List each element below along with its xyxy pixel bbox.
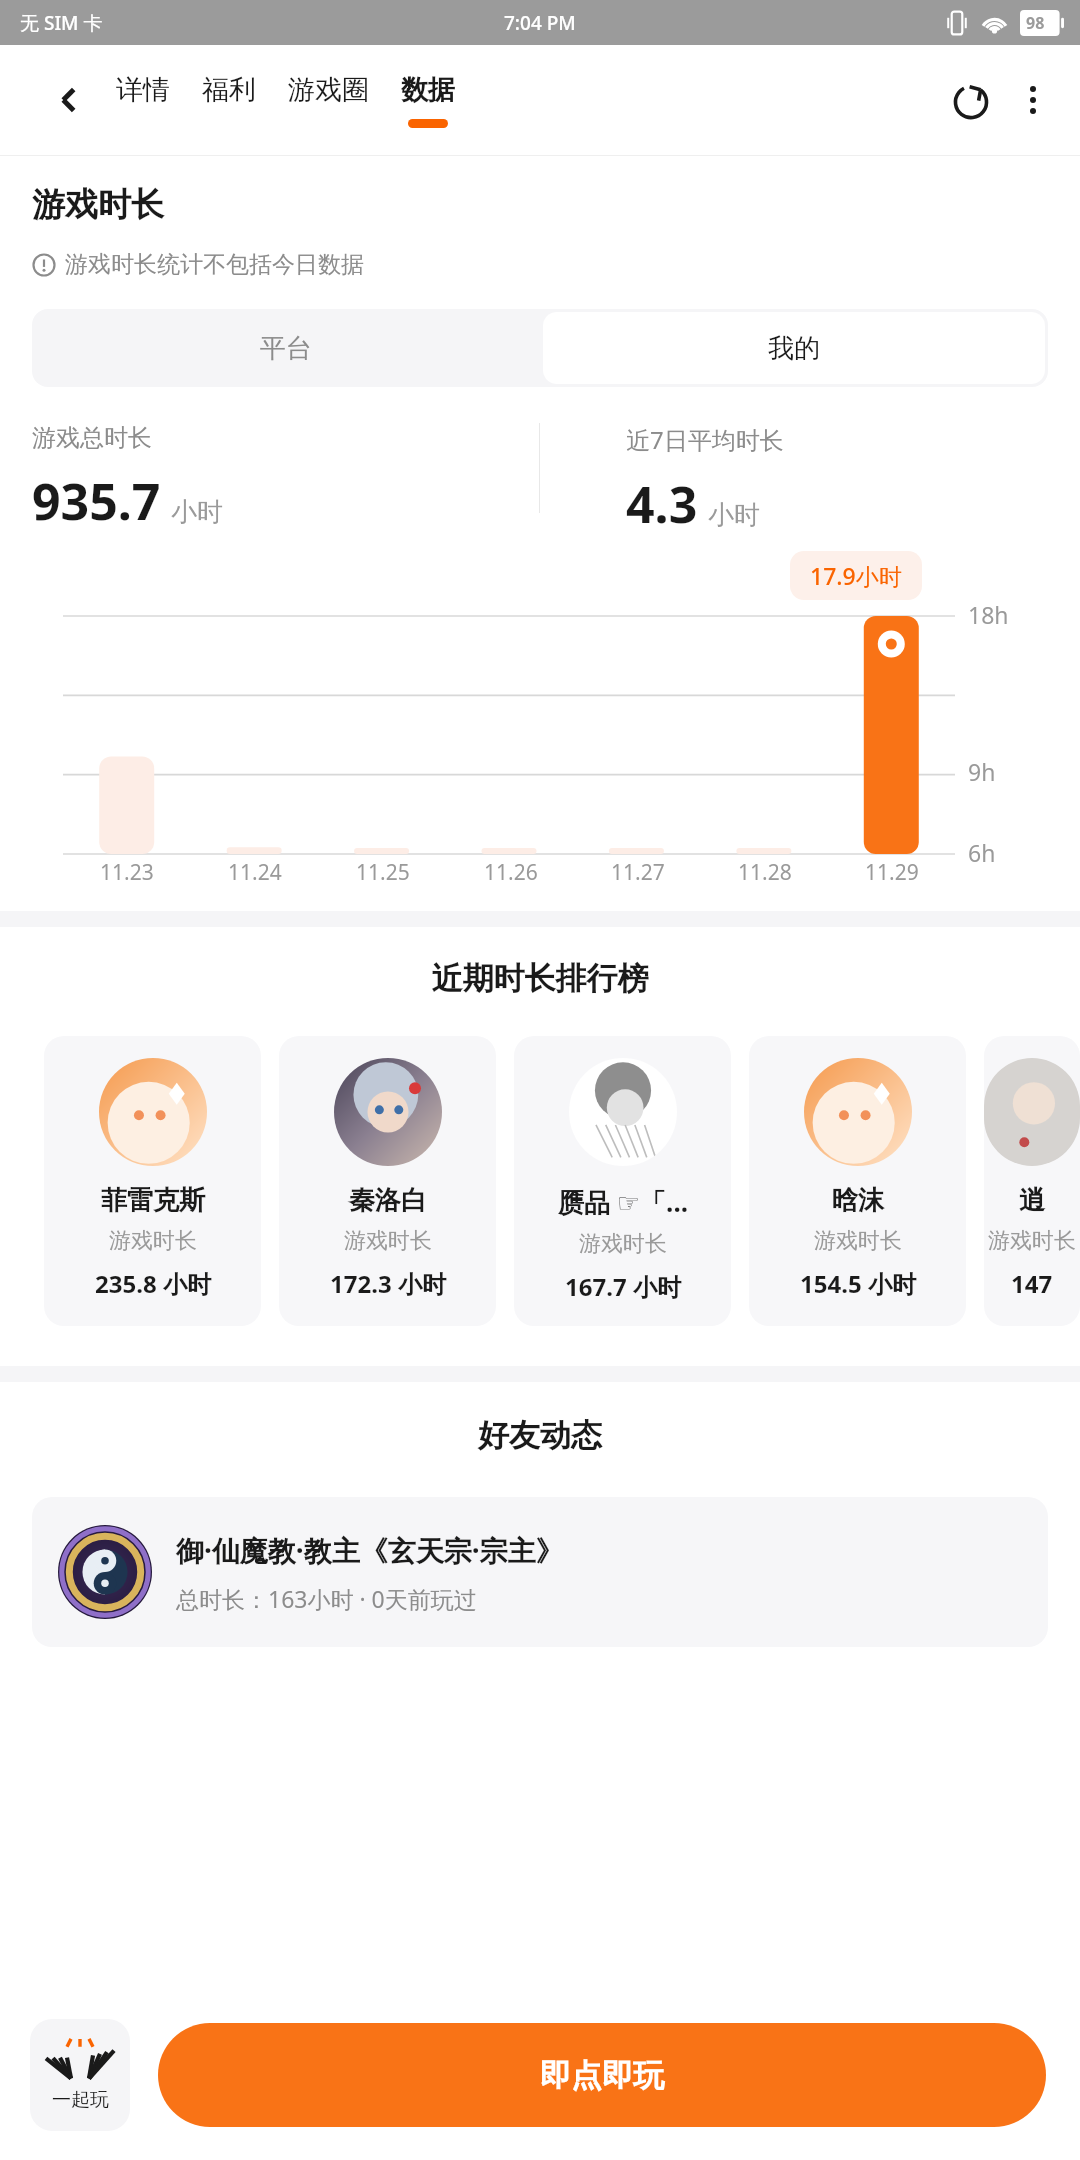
staticText: 游戏时长: [579, 1230, 667, 1258]
staticText: 18h: [968, 599, 1009, 630]
button[interactable]: 一起玩: [30, 2019, 130, 2131]
staticText: 游戏时长: [814, 1227, 902, 1255]
staticText: 6h: [968, 837, 996, 868]
staticText: 无 SIM 卡: [20, 10, 103, 36]
staticText: 福利: [202, 73, 256, 107]
staticText: 游戏时长: [988, 1227, 1076, 1255]
staticText: 17.9小时: [810, 560, 902, 591]
button[interactable]: Share: [940, 69, 1002, 131]
button[interactable]: 御·仙魔教·教主《玄天宗·宗主》: [32, 1497, 1048, 1647]
staticText: 晗沫: [832, 1184, 884, 1217]
button[interactable]: 我的: [543, 312, 1045, 384]
button[interactable]: 秦洛白: [279, 1036, 496, 1326]
staticText: 11.26: [484, 858, 538, 887]
staticText: 172.3 小时: [330, 1267, 446, 1300]
button[interactable]: 福利: [200, 69, 258, 132]
staticText: 11.29: [865, 858, 919, 887]
button[interactable]: 逍: [984, 1036, 1080, 1326]
button[interactable]: 晗沫: [749, 1036, 966, 1326]
staticText: 游戏时长: [32, 184, 164, 226]
staticText: 平台: [260, 332, 312, 365]
staticText: 147: [1011, 1267, 1053, 1300]
staticText: 逍: [1019, 1184, 1045, 1217]
staticText: 御·仙魔教·教主《玄天宗·宗主》: [176, 1531, 564, 1569]
staticText: 11.27: [611, 858, 665, 887]
staticText: 11.24: [228, 858, 282, 887]
staticText: 详情: [116, 73, 170, 107]
staticText: 菲雷克斯: [101, 1184, 205, 1217]
staticText: 我的: [768, 332, 820, 365]
staticText: 游戏时长: [109, 1227, 197, 1255]
staticText: 935.7: [32, 467, 161, 535]
staticText: 好友动态: [0, 1416, 1080, 1455]
staticText: 游戏总时长: [32, 423, 152, 453]
staticText: 近期时长排行榜: [0, 959, 1080, 998]
staticText: 赝品 ☞「...: [558, 1184, 688, 1220]
staticText: 167.7 小时: [565, 1270, 681, 1303]
staticText: 98: [1026, 12, 1045, 34]
staticText: 235.8 小时: [95, 1267, 211, 1300]
staticText: 11.28: [738, 858, 792, 887]
staticText: 11.23: [100, 858, 154, 887]
button[interactable]: 数据: [399, 69, 457, 132]
button[interactable]: Back: [46, 77, 92, 123]
staticText: 近7日平均时长: [626, 423, 784, 456]
button[interactable]: 平台: [32, 309, 540, 387]
button[interactable]: 即点即玩: [158, 2023, 1046, 2127]
button[interactable]: More options: [1002, 69, 1064, 131]
staticText: 小时: [708, 499, 760, 532]
staticText: 小时: [171, 496, 223, 529]
staticText: 9h: [968, 756, 996, 787]
staticText: 即点即玩: [540, 2056, 664, 2095]
staticText: 7:04 PM: [504, 10, 576, 36]
staticText: 总时长：163小时 · 0天前玩过: [176, 1583, 477, 1614]
staticText: 4.3: [626, 470, 698, 538]
staticText: 秦洛白: [349, 1184, 427, 1217]
button[interactable]: 游戏圈: [286, 69, 371, 132]
staticText: 154.5 小时: [800, 1267, 916, 1300]
button[interactable]: 赝品 ☞「...: [514, 1036, 731, 1326]
button[interactable]: 菲雷克斯: [44, 1036, 261, 1326]
button[interactable]: 详情: [114, 69, 172, 132]
staticText: 数据: [401, 73, 455, 107]
staticText: 游戏圈: [288, 73, 369, 107]
staticText: 游戏时长统计不包括今日数据: [65, 250, 364, 279]
staticText: 一起玩: [52, 2088, 109, 2112]
staticText: 游戏时长: [344, 1227, 432, 1255]
staticText: 11.25: [356, 858, 410, 887]
